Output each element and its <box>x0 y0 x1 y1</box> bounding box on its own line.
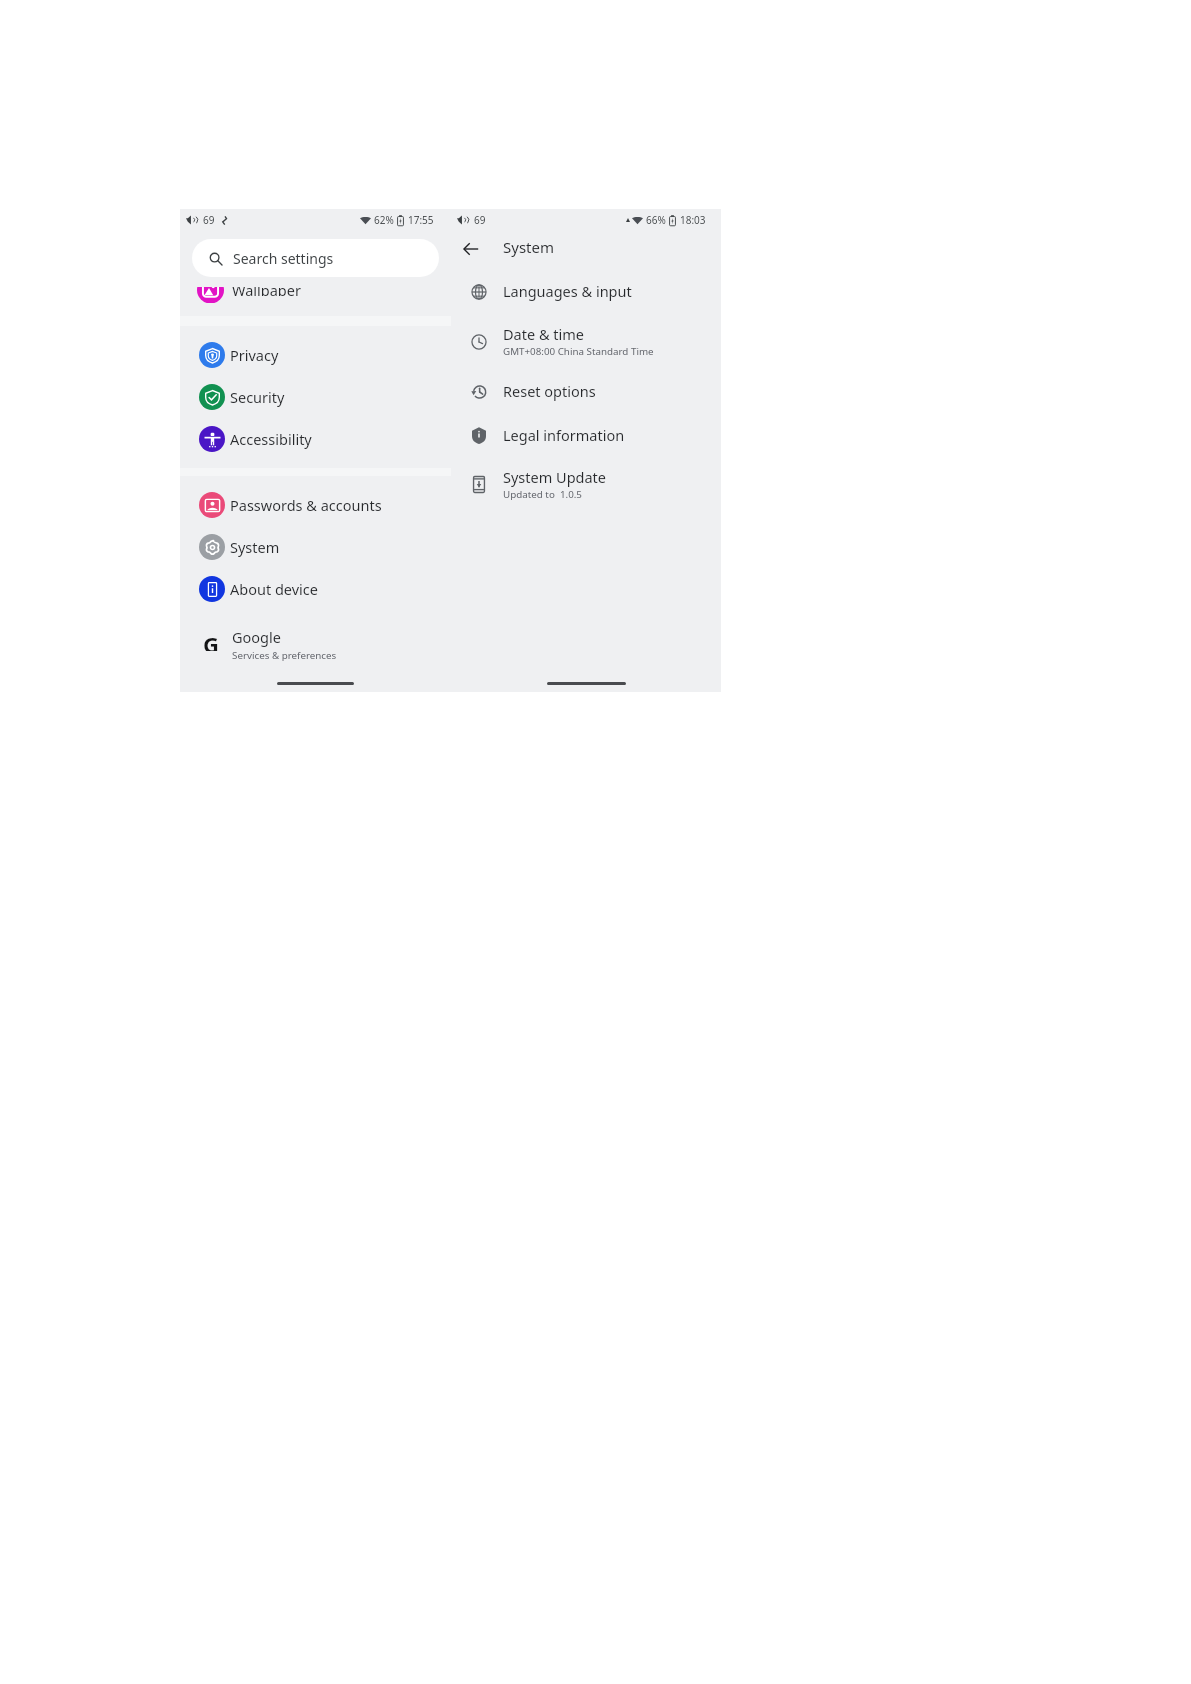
staticText: Passwords & accounts <box>230 495 382 515</box>
button[interactable]: Wallpaper <box>180 287 451 303</box>
staticText: 17:55 <box>408 213 434 227</box>
staticText: 69 <box>474 213 486 227</box>
button[interactable]: Privacy <box>180 334 451 376</box>
button[interactable]: Languages & input <box>451 270 721 312</box>
staticText: System Update <box>503 467 607 487</box>
button[interactable]: Security <box>180 376 451 418</box>
staticText: 18:03 <box>680 213 706 227</box>
button[interactable]: System <box>180 526 451 568</box>
button[interactable]: G <box>180 619 451 659</box>
staticText: Google <box>232 627 281 647</box>
button[interactable]: Back <box>457 235 485 263</box>
staticText: Languages & input <box>503 281 632 301</box>
button[interactable]: Accessibility <box>180 418 451 460</box>
button[interactable]: About device <box>180 568 451 610</box>
staticText: Reset options <box>503 381 596 401</box>
button[interactable]: Search settings <box>192 239 439 277</box>
button[interactable]: Date & time <box>451 320 721 362</box>
staticText: Date & time <box>503 324 584 344</box>
staticText: System <box>230 537 280 557</box>
staticText: Services & preferences <box>232 649 337 662</box>
staticText: Accessibility <box>230 429 312 449</box>
staticText: Search settings <box>233 249 334 268</box>
staticText: Privacy <box>230 345 279 365</box>
staticText: System <box>503 237 554 257</box>
button[interactable]: Passwords & accounts <box>180 484 451 526</box>
staticText: GMT+08:00 China Standard Time <box>503 345 654 358</box>
button[interactable]: System Update <box>451 463 721 505</box>
staticText: G <box>203 629 219 651</box>
staticText: 69 <box>203 213 215 227</box>
staticText: 66% <box>646 213 666 227</box>
staticText: Legal information <box>503 425 625 445</box>
staticText: Updated to 1.0.5 <box>503 488 582 501</box>
staticText: About device <box>230 579 318 599</box>
button[interactable]: Legal information <box>451 414 721 456</box>
staticText: Security <box>230 387 285 407</box>
staticText: 62% <box>374 213 394 227</box>
button[interactable]: Reset options <box>451 370 721 412</box>
staticText: Wallpaper <box>232 287 301 296</box>
